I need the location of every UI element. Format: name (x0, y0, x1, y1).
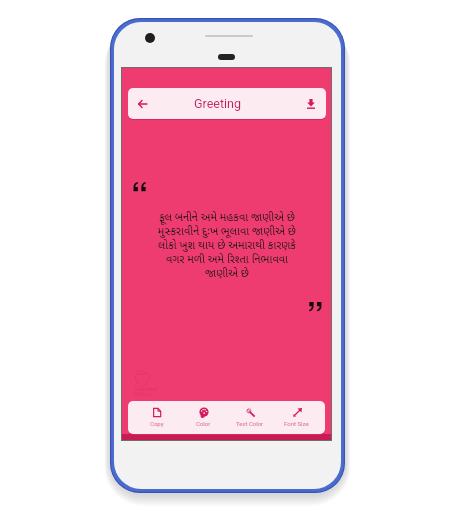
staticText: Copy (150, 420, 164, 427)
staticText: ” (307, 300, 325, 338)
button[interactable]: Text Color (232, 401, 267, 434)
staticText: Font Size (284, 420, 309, 427)
button[interactable]: Copy (139, 401, 174, 434)
staticText: Color (196, 420, 211, 427)
staticText: Greeting (194, 96, 241, 111)
button[interactable]: Font Size (279, 401, 314, 434)
staticText: “ (131, 180, 149, 218)
button[interactable]: Download (295, 88, 326, 119)
staticText: Text Color (236, 420, 264, 427)
button[interactable]: Color (186, 401, 221, 434)
staticText: ફૂલ બનીને અમે મહકવા જાણીએ છે મુસ્કરાવીને… (158, 211, 296, 281)
button[interactable]: Back (128, 88, 157, 119)
